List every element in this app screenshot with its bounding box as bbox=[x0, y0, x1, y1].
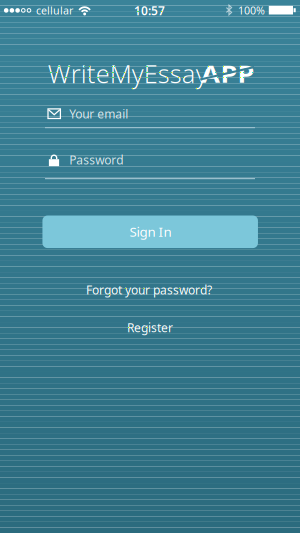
staticText: 100% bbox=[238, 3, 265, 17]
staticText: Forgot your password? bbox=[86, 282, 212, 298]
staticText: cellular bbox=[36, 3, 73, 17]
staticText: 10:57 bbox=[134, 3, 165, 18]
staticText: Sign In bbox=[129, 223, 171, 240]
staticText: Register bbox=[127, 320, 173, 336]
staticText: Your email bbox=[69, 106, 128, 122]
staticText: WriteMyEssay bbox=[48, 57, 208, 90]
staticText: Password bbox=[69, 152, 123, 168]
staticText: APP bbox=[204, 57, 251, 89]
